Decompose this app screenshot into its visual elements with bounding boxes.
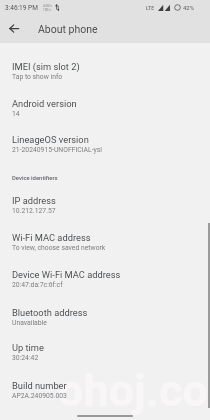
button[interactable]: Wi-Fi MAC address xyxy=(0,232,210,252)
staticText: 3:46:19 PM xyxy=(5,4,38,12)
staticText: IMEI (sim slot 2) xyxy=(12,61,80,72)
staticText: 10K/s xyxy=(43,8,52,12)
staticText: 20:47:da:7c:6f:cf xyxy=(12,281,63,289)
button[interactable]: LineageOS version xyxy=(0,134,210,154)
staticText: To view, choose saved network xyxy=(12,244,106,252)
staticText: Tap to show info xyxy=(12,73,63,81)
staticText: 42% xyxy=(183,4,195,11)
staticText: 21-20240915-UNOFFICIAL-ysl xyxy=(12,146,102,154)
staticText: Android version xyxy=(12,98,77,109)
staticText: 30:24:42 xyxy=(12,354,39,362)
button[interactable]: IMEI (sim slot 2) xyxy=(0,61,210,81)
staticText: Build number xyxy=(12,380,67,391)
staticText: About phone xyxy=(38,23,98,35)
staticText: LineageOS version xyxy=(12,134,89,145)
button[interactable]: Device Wi-Fi MAC address xyxy=(0,269,210,289)
button[interactable]: Up time xyxy=(0,342,210,362)
button[interactable]: IP address xyxy=(0,195,210,215)
button[interactable]: Android version xyxy=(0,98,210,118)
staticText: Device identifiers xyxy=(12,175,58,182)
staticText: Up time xyxy=(12,342,44,353)
staticText: Wi-Fi MAC address xyxy=(12,232,91,243)
staticText: IP address xyxy=(12,195,56,206)
staticText: 14 xyxy=(12,110,20,118)
staticText: 10.212.127.57 xyxy=(12,207,56,215)
staticText: Device Wi-Fi MAC address xyxy=(12,269,121,280)
button[interactable]: Build number xyxy=(0,380,210,400)
staticText: Unavailable xyxy=(12,319,47,327)
staticText: AP2A.240905.003 xyxy=(12,392,67,400)
button[interactable]: Bluetooth address xyxy=(0,307,210,327)
staticText: Bluetooth address xyxy=(12,307,88,318)
staticText: ohoj.co xyxy=(58,364,208,417)
staticText: LTE xyxy=(146,5,155,11)
button[interactable]: Back xyxy=(0,15,28,43)
staticText: 4.6K/s xyxy=(43,4,52,8)
